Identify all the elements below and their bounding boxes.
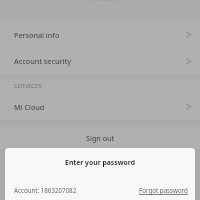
staticText: SERVICES: [14, 82, 42, 90]
staticText: Sign out: [86, 133, 115, 143]
button[interactable]: Personal info: [0, 21, 200, 48]
button[interactable]: Mi Cloud: [0, 93, 200, 120]
staticText: Enter your password: [5, 158, 195, 167]
button[interactable]: Sign out: [0, 127, 200, 149]
staticText: Mi Cloud: [14, 102, 186, 112]
staticText: Account security: [14, 56, 186, 66]
button[interactable]: Forgot password: [139, 186, 188, 194]
staticText: Account: 1863207082: [14, 186, 77, 194]
button[interactable]: Account security: [0, 48, 200, 74]
staticText: Personal info: [14, 30, 186, 40]
